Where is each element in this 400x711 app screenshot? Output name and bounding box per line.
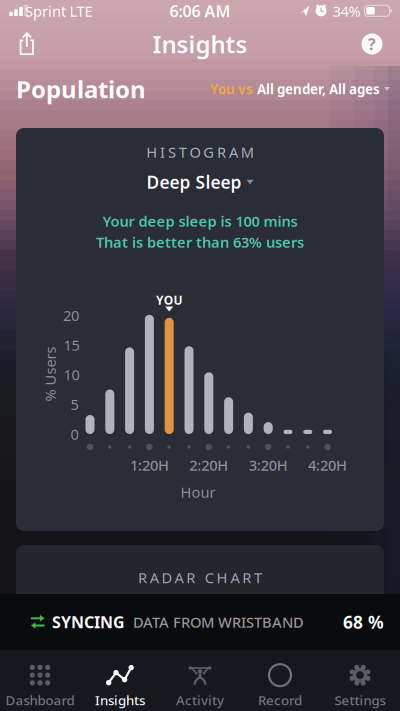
staticText: That is better than 63% users [96,232,304,252]
button[interactable]: You vs [210,80,390,98]
staticText: LTE [69,1,92,21]
staticText: Activity [176,691,224,709]
staticText: Insights [152,28,247,60]
staticText: 2:20H [189,455,228,475]
button[interactable]: Dashboard [0,644,80,711]
staticText: Hour [180,482,215,502]
staticText: 68 % [343,610,384,633]
staticText: RADAR CHART [138,568,262,587]
staticText: 3:20H [249,455,288,475]
staticText: Your deep sleep is 100 mins [102,211,297,231]
button[interactable]: Help [357,29,387,59]
staticText: SYNCING [52,611,125,633]
staticText: Settings [334,691,385,709]
staticText: 10 [63,365,79,384]
staticText: Insights [95,691,145,709]
button[interactable]: Record [240,644,320,711]
staticText: 6:06 AM [169,0,230,22]
staticText: ? [368,33,376,55]
staticText: Population [16,73,146,105]
staticText: Deep Sleep [146,170,241,193]
staticText: 4:20H [308,455,347,475]
staticText: All gender, All ages [257,80,380,98]
staticText: Dashboard [5,691,74,709]
staticText: Record [258,691,302,709]
staticText: 5 [70,395,78,414]
button[interactable]: Activity [160,644,240,711]
button[interactable]: Settings [320,644,400,711]
staticText: YOU [156,292,182,308]
button[interactable]: Deep Sleep metric selector [146,170,253,193]
staticText: 1:20H [130,455,169,475]
staticText: DATA FROM WRISTBAND [133,612,304,632]
staticText: Sprint [25,1,66,21]
staticText: 15 [63,335,79,355]
button[interactable]: Insights [80,644,160,711]
button[interactable]: Share [9,22,45,66]
staticText: 34% [332,1,360,21]
staticText: HISTOGRAM [146,142,254,162]
staticText: 0 [70,424,78,444]
staticText: You vs [210,80,253,98]
staticText: 20 [63,306,79,325]
staticText: % Users [22,364,77,384]
